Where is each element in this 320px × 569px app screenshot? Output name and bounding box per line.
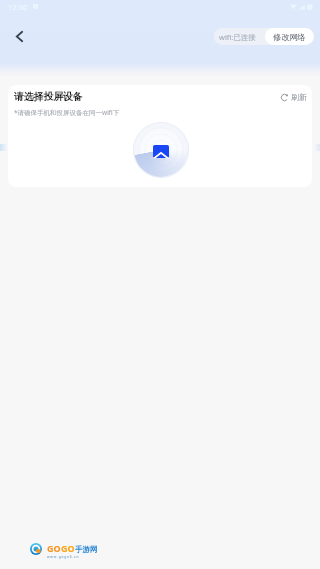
- button[interactable]: 刷新: [280, 92, 307, 102]
- button[interactable]: Back: [6, 23, 33, 50]
- staticText: *请确保手机和投屏设备在同一wifi下: [14, 108, 120, 117]
- staticText: 刷新: [291, 92, 307, 102]
- staticText: 手游网: [75, 545, 98, 554]
- staticText: 修改网络: [273, 32, 306, 42]
- staticText: wifi:已连接: [219, 32, 256, 42]
- staticText: w w w . g o g o 6 . c n: [47, 555, 79, 559]
- staticText: 12:00: [8, 2, 28, 12]
- staticText: GO: [61, 542, 75, 554]
- staticText: GO: [47, 542, 61, 554]
- button[interactable]: 修改网络: [265, 28, 314, 45]
- staticText: 请选择投屏设备: [14, 91, 83, 103]
